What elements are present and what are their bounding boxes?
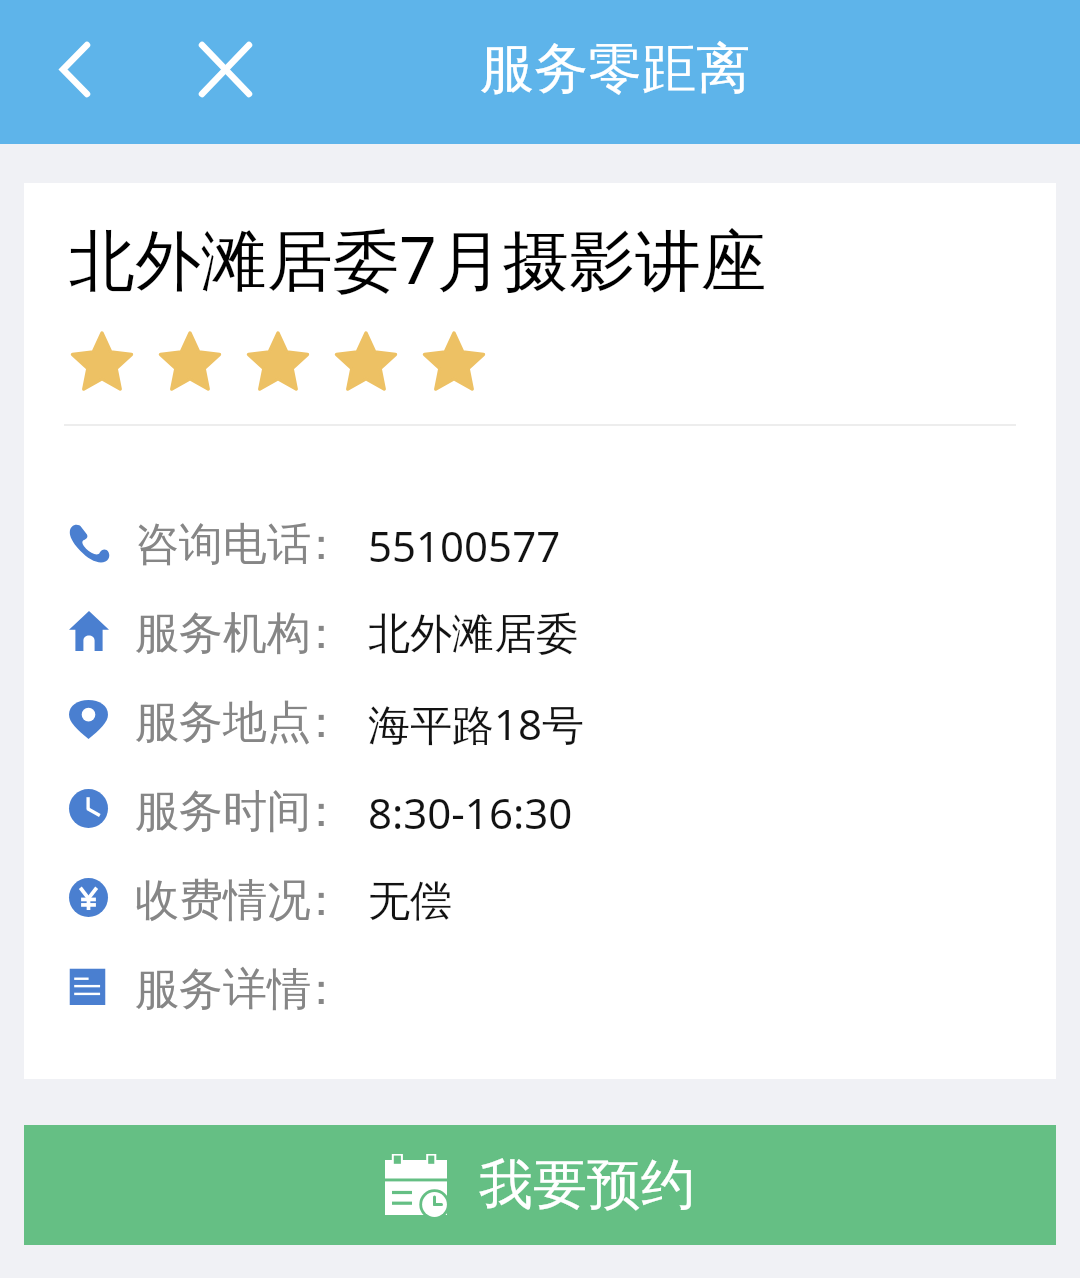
staticText: 我要预约 [479, 1151, 695, 1219]
staticText: ： [299, 873, 343, 928]
staticText: ： [299, 517, 343, 572]
staticText: 8:30-16:30 [368, 784, 573, 841]
button[interactable]: Back [26, 21, 123, 118]
staticText: ： [299, 784, 343, 839]
staticText: 海平路18号 [368, 695, 585, 752]
staticText: ： [299, 606, 343, 661]
staticText: ： [299, 695, 343, 750]
staticText: 北外滩居委 [368, 608, 578, 661]
staticText: 55100577 [368, 517, 561, 574]
staticText: ： [299, 962, 343, 1017]
button[interactable]: Close [177, 21, 274, 118]
staticText: 服务地点 [135, 695, 311, 750]
staticText: 服务详情 [135, 962, 311, 1017]
staticText: 服务时间 [135, 784, 311, 839]
button[interactable]: 我要预约 [24, 1125, 1056, 1245]
staticText: 北外滩居委7月摄影讲座 [69, 213, 767, 303]
staticText: 咨询电话 [135, 517, 311, 572]
staticText: 服务零距离 [480, 35, 750, 103]
staticText: 无偿 [368, 875, 452, 928]
staticText: 收费情况 [135, 873, 311, 928]
staticText: 服务机构 [135, 606, 311, 661]
